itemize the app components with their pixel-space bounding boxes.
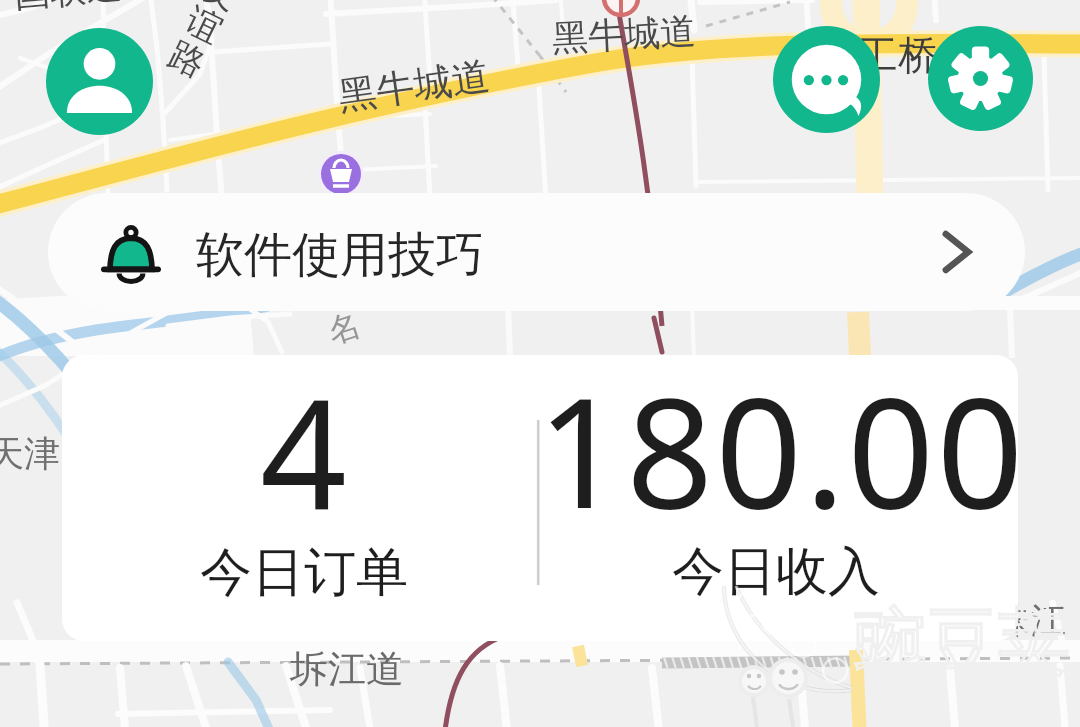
- staticText: 180.00: [537, 346, 1026, 553]
- button[interactable]: [540, 355, 1018, 641]
- staticText: 今日订单: [200, 540, 408, 606]
- staticText: 坼江道: [290, 645, 404, 693]
- staticText: 名: [323, 304, 365, 352]
- staticText: 软件使用技巧: [196, 225, 484, 285]
- staticText: 黑牛城道: [335, 52, 493, 120]
- button[interactable]: Settings: [928, 26, 1033, 131]
- staticText: 黑牛城道: [551, 8, 697, 61]
- staticText: 今日收入: [672, 539, 880, 605]
- button[interactable]: Messages: [773, 26, 880, 133]
- button[interactable]: [62, 355, 538, 641]
- staticText: 天津i: [0, 428, 70, 477]
- staticText: 珠江: [994, 598, 1066, 643]
- button[interactable]: 软件使用技巧: [48, 193, 1025, 311]
- staticText: 友 谊 路: [161, 0, 246, 88]
- button[interactable]: Profile: [46, 28, 153, 135]
- staticText: 工桥: [858, 30, 938, 80]
- staticText: 豌豆荚: [854, 597, 1070, 688]
- other: Open tips: [941, 227, 973, 277]
- staticText: 4: [260, 348, 347, 555]
- staticText: 中国联通: [0, 0, 124, 20]
